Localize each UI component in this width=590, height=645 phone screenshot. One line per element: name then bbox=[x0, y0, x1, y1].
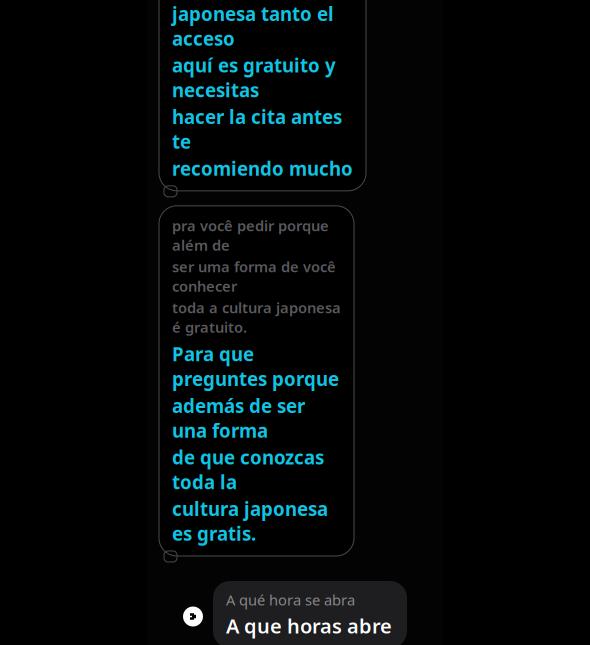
staticText: cultura japonesa es gratis. bbox=[172, 496, 328, 546]
staticText: japonesa tanto el acceso bbox=[172, 1, 334, 51]
staticText: Para que preguntes porque bbox=[172, 342, 339, 391]
button[interactable]: A qué hora se abra bbox=[183, 581, 407, 645]
staticText: toda a cultura japonesa é gratuito. bbox=[172, 298, 341, 337]
staticText: además de ser una forma bbox=[172, 393, 305, 443]
staticText: aquí es gratuito y necesitas bbox=[172, 53, 336, 102]
staticText: ser uma forma de você conhecer bbox=[172, 257, 336, 296]
staticText: A que horas abre bbox=[226, 612, 392, 639]
staticText: pra você pedir porque além de bbox=[172, 216, 329, 255]
staticText: hacer la cita antes te bbox=[172, 104, 342, 154]
staticText: de que conozcas toda la bbox=[172, 445, 324, 494]
staticText: recomiendo mucho bbox=[172, 156, 353, 181]
staticText: A qué hora se abra bbox=[226, 590, 355, 609]
